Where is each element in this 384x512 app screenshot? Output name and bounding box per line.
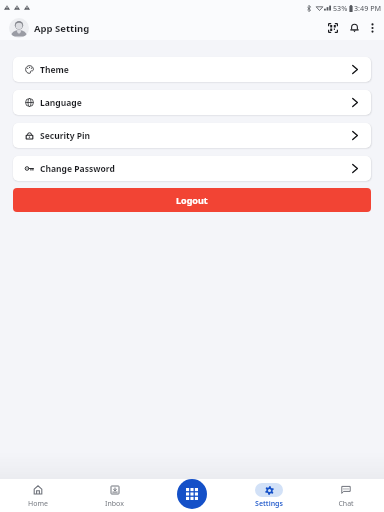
button[interactable]: Settings bbox=[230, 479, 307, 512]
staticText: Change Password bbox=[40, 163, 115, 175]
button[interactable]: Notifications bbox=[346, 20, 362, 36]
staticText: Security Pin bbox=[40, 130, 91, 142]
staticText: Settings bbox=[255, 499, 283, 509]
button[interactable]: Logout bbox=[13, 188, 371, 212]
button[interactable]: Apps bbox=[177, 479, 207, 509]
button[interactable]: Scan QR code bbox=[325, 20, 341, 36]
button[interactable]: Chat bbox=[307, 479, 384, 512]
button[interactable]: Language bbox=[13, 90, 371, 115]
staticText: Chat bbox=[338, 499, 354, 509]
button[interactable]: Home bbox=[0, 479, 76, 512]
staticText: Logout bbox=[176, 194, 208, 206]
staticText: Language bbox=[40, 97, 82, 109]
staticText: Home bbox=[28, 499, 48, 509]
button[interactable]: Change Password bbox=[13, 156, 371, 181]
staticText: 53% bbox=[333, 3, 348, 13]
staticText: App Setting bbox=[34, 22, 90, 35]
button[interactable]: More options bbox=[364, 20, 380, 36]
staticText: Inbox bbox=[105, 499, 124, 509]
staticText: 3:49 PM bbox=[354, 3, 382, 13]
staticText: Theme bbox=[40, 64, 69, 76]
button[interactable]: Security Pin bbox=[13, 123, 371, 148]
button[interactable]: Inbox bbox=[76, 479, 153, 512]
button[interactable]: Theme bbox=[13, 57, 371, 82]
